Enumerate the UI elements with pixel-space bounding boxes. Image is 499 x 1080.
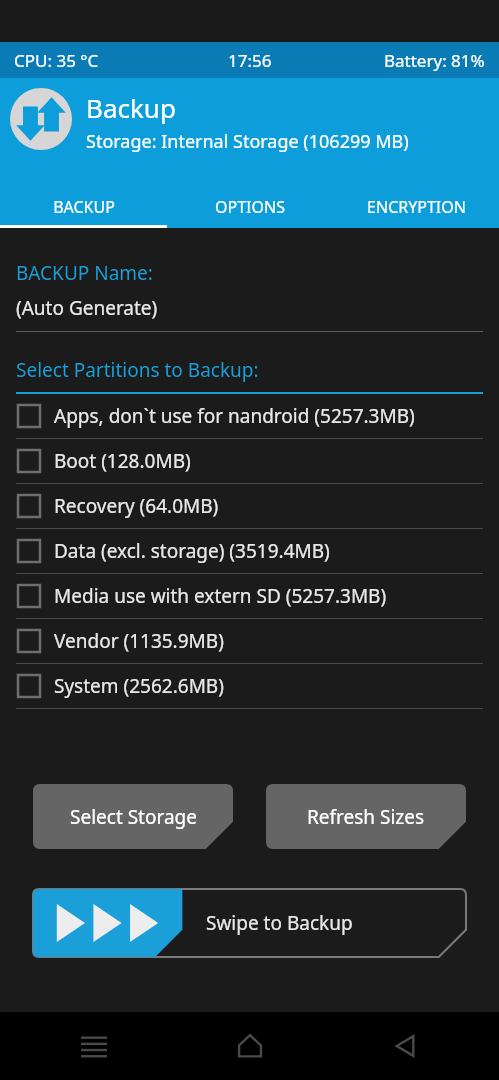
staticText: Recovery (64.0MB) (54, 493, 219, 519)
staticText: Data (excl. storage) (3519.4MB) (54, 538, 330, 564)
button[interactable]: Apps, don`t use for nandroid (5257.3MB) (0, 394, 499, 439)
button[interactable]: Data (excl. storage) (3519.4MB) (0, 529, 499, 574)
button[interactable]: (Auto Generate) (0, 295, 499, 321)
staticText: Media use with extern SD (5257.3MB) (54, 583, 387, 609)
staticText: 17:56 (228, 49, 272, 72)
staticText: Apps, don`t use for nandroid (5257.3MB) (54, 403, 415, 429)
button[interactable]: Media use with extern SD (5257.3MB) (0, 574, 499, 619)
staticText: Vendor (1135.9MB) (54, 628, 224, 654)
staticText: Backup (86, 90, 176, 125)
staticText: ENCRYPTION (367, 196, 466, 218)
staticText: Swipe to Backup (206, 910, 353, 936)
button[interactable]: Select Storage (33, 784, 233, 849)
button[interactable]: Boot (128.0MB) (0, 439, 499, 484)
button[interactable]: Recovery (64.0MB) (0, 484, 499, 529)
button[interactable]: ENCRYPTION (333, 185, 499, 228)
staticText: BACKUP Name: (16, 260, 153, 286)
button[interactable]: System (2562.6MB) (0, 664, 499, 709)
staticText: Refresh Sizes (307, 804, 425, 830)
staticText: (Auto Generate) (16, 295, 158, 321)
other: TWRP logo (10, 88, 72, 150)
button[interactable]: Refresh Sizes (266, 784, 466, 849)
staticText: CPU: 35 °C (14, 49, 99, 72)
staticText: Storage: Internal Storage (106299 MB) (86, 129, 409, 154)
button[interactable]: Recent apps (70, 1022, 118, 1070)
button[interactable]: OPTIONS (167, 185, 333, 228)
button[interactable]: BACKUP (0, 185, 167, 228)
staticText: Boot (128.0MB) (54, 448, 191, 474)
button[interactable]: Swipe to Backup (33, 889, 466, 957)
staticText: Select Partitions to Backup: (16, 357, 259, 383)
button[interactable]: Vendor (1135.9MB) (0, 619, 499, 664)
button[interactable]: Back (381, 1022, 429, 1070)
staticText: OPTIONS (215, 196, 285, 218)
staticText: System (2562.6MB) (54, 673, 224, 699)
staticText: Battery: 81% (384, 49, 485, 72)
staticText: Select Storage (70, 804, 197, 830)
staticText: BACKUP (53, 196, 115, 218)
button[interactable]: Home (226, 1022, 274, 1070)
